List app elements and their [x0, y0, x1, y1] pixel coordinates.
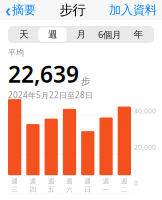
staticText: 40,000	[134, 107, 156, 115]
staticText: 2024年5月22日至28日	[8, 90, 93, 100]
staticText: 週四	[29, 177, 36, 194]
staticText: 週日	[84, 177, 91, 194]
staticText: 年	[134, 29, 143, 40]
staticText: 步行	[59, 2, 85, 18]
button[interactable]: 6個月	[95, 27, 124, 41]
staticText: 6個月	[98, 28, 121, 41]
staticText: 平均	[8, 48, 24, 58]
staticText: 0	[134, 179, 138, 188]
staticText: 20,000	[134, 143, 156, 151]
staticText: ‹	[5, 0, 11, 21]
staticText: 週二	[121, 177, 128, 194]
button[interactable]: ‹	[0, 0, 36, 24]
button[interactable]: 天	[9, 27, 38, 41]
staticText: 週三	[11, 177, 18, 194]
button[interactable]: 月	[67, 27, 95, 41]
staticText: 摘要	[12, 3, 36, 17]
staticText: 22,639	[8, 59, 79, 89]
button[interactable]: 週	[38, 27, 67, 41]
staticText: 步	[81, 75, 90, 87]
staticText: 週六	[66, 177, 73, 194]
button[interactable]: 加入資料	[109, 0, 162, 20]
button[interactable]: 年	[124, 27, 152, 41]
staticText: 天	[19, 29, 28, 40]
staticText: 月	[76, 29, 85, 40]
staticText: 週	[48, 29, 57, 40]
staticText: 加入資料	[109, 3, 157, 17]
staticText: 週五	[48, 177, 55, 194]
staticText: 週一	[103, 177, 110, 194]
